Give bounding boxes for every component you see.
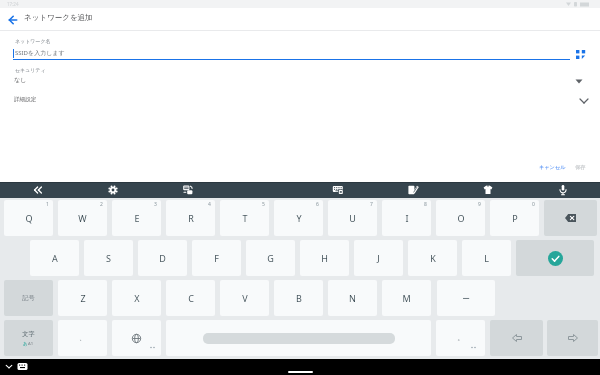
staticText: 2 [100,201,103,208]
button[interactable] [576,50,586,59]
staticText: 9 [478,201,481,208]
button[interactable] [436,320,485,356]
button[interactable] [166,320,431,356]
button[interactable] [166,280,215,316]
staticText: T [242,212,248,224]
staticText: S [106,252,111,264]
button[interactable] [332,184,344,196]
staticText: M [402,292,411,304]
button[interactable] [407,184,419,196]
staticText: 8 [424,201,427,208]
staticText: 。 [457,334,464,342]
button[interactable] [112,200,161,236]
staticText: SSIDを入力します [15,49,65,57]
staticText: E [134,212,140,224]
button[interactable] [4,280,53,316]
button[interactable] [516,240,594,276]
staticText: あ [23,341,28,346]
staticText: 4 [208,201,211,208]
button[interactable] [9,16,17,24]
staticText: K [430,252,436,264]
staticText: 7 [370,201,373,208]
staticText: F [214,252,219,264]
staticText: I [405,212,409,224]
staticText: なし [14,76,27,84]
button[interactable] [4,320,53,356]
button[interactable]: キャンセル [534,160,570,174]
button[interactable] [182,184,194,196]
button[interactable] [58,280,107,316]
button[interactable] [382,280,431,316]
staticText: 保存 [575,164,586,171]
button[interactable] [220,200,269,236]
button[interactable] [382,200,431,236]
button[interactable] [482,184,494,196]
button[interactable] [138,240,187,276]
staticText: H [321,252,328,264]
button[interactable] [246,240,295,276]
staticText: C [188,292,194,304]
button[interactable] [58,200,107,236]
button[interactable] [192,240,241,276]
staticText: P [512,212,518,224]
button[interactable] [354,240,403,276]
staticText: V [242,292,248,304]
button[interactable] [579,98,589,104]
staticText: D [159,252,166,264]
button[interactable] [17,362,28,371]
staticText: 3 [154,201,157,208]
staticText: 、 [79,334,86,342]
button[interactable] [300,240,349,276]
staticText: L [484,252,489,264]
staticText: 6 [316,201,319,208]
button[interactable] [166,200,215,236]
staticText: G [267,252,274,264]
button[interactable] [547,320,598,356]
staticText: ネットワークを追加 [24,13,93,22]
staticText: N [349,292,356,304]
button[interactable] [557,184,569,196]
staticText: ー [462,294,470,303]
button[interactable] [408,240,457,276]
staticText: 記号 [22,294,35,302]
button[interactable] [437,280,495,316]
button[interactable] [0,73,600,87]
button[interactable] [112,320,161,356]
button[interactable] [328,200,377,236]
staticText: A1 [28,341,34,347]
button[interactable] [436,200,485,236]
staticText: U [349,212,356,224]
staticText: A [52,252,58,264]
button[interactable] [274,200,323,236]
staticText: X [134,292,140,304]
button[interactable] [4,200,53,236]
button[interactable] [84,240,133,276]
staticText: Q [25,212,33,224]
staticText: キャンセル [539,164,566,171]
button[interactable] [544,200,597,236]
staticText: B [296,292,302,304]
staticText: Y [296,212,302,224]
staticText: ネットワーク名 [15,38,51,44]
button[interactable]: 保存 [570,160,590,174]
button[interactable] [490,320,543,356]
staticText: 0 [532,201,535,208]
staticText: 5 [262,201,265,208]
button[interactable] [5,363,13,370]
button[interactable] [112,280,161,316]
staticText: W [78,212,87,224]
button[interactable] [107,184,119,196]
button[interactable] [30,240,79,276]
staticText: J [377,252,380,264]
staticText: Z [80,292,86,304]
staticText: 文字 [22,330,35,338]
staticText: 17:24 [7,1,19,7]
staticText: R [188,212,194,224]
button[interactable] [220,280,269,316]
button[interactable] [328,280,377,316]
button[interactable] [32,184,44,196]
button[interactable] [462,240,511,276]
button[interactable] [490,200,539,236]
button[interactable] [274,280,323,316]
